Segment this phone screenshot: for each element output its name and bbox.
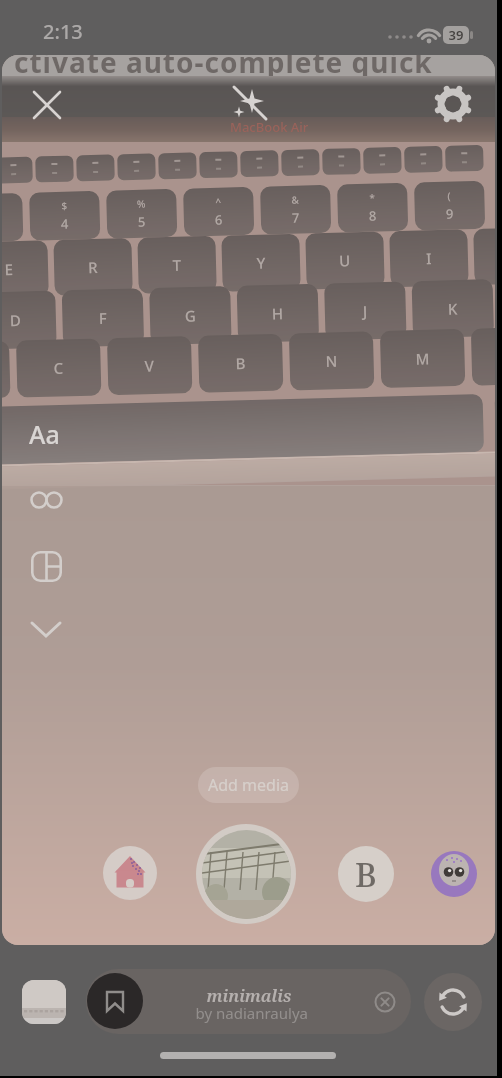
button[interactable]: [31, 551, 62, 582]
button[interactable]: [22, 980, 66, 1024]
button[interactable]: B: [338, 846, 394, 902]
staticText: B: [355, 852, 377, 897]
button[interactable]: [29, 489, 65, 511]
button[interactable]: Aa: [29, 417, 60, 451]
button[interactable]: [33, 91, 61, 119]
button[interactable]: [232, 85, 268, 121]
button[interactable]: [30, 617, 62, 639]
button[interactable]: [424, 973, 482, 1031]
button[interactable]: [103, 846, 157, 900]
staticText: 2:13: [43, 18, 83, 45]
button[interactable]: [86, 969, 411, 1034]
button[interactable]: Add media: [198, 767, 299, 803]
button[interactable]: [436, 87, 470, 121]
staticText: MacBook Air: [230, 118, 309, 136]
staticText: Add media: [208, 774, 289, 796]
staticText: Aa: [29, 417, 60, 451]
button[interactable]: [196, 824, 296, 924]
button[interactable]: [431, 851, 477, 897]
